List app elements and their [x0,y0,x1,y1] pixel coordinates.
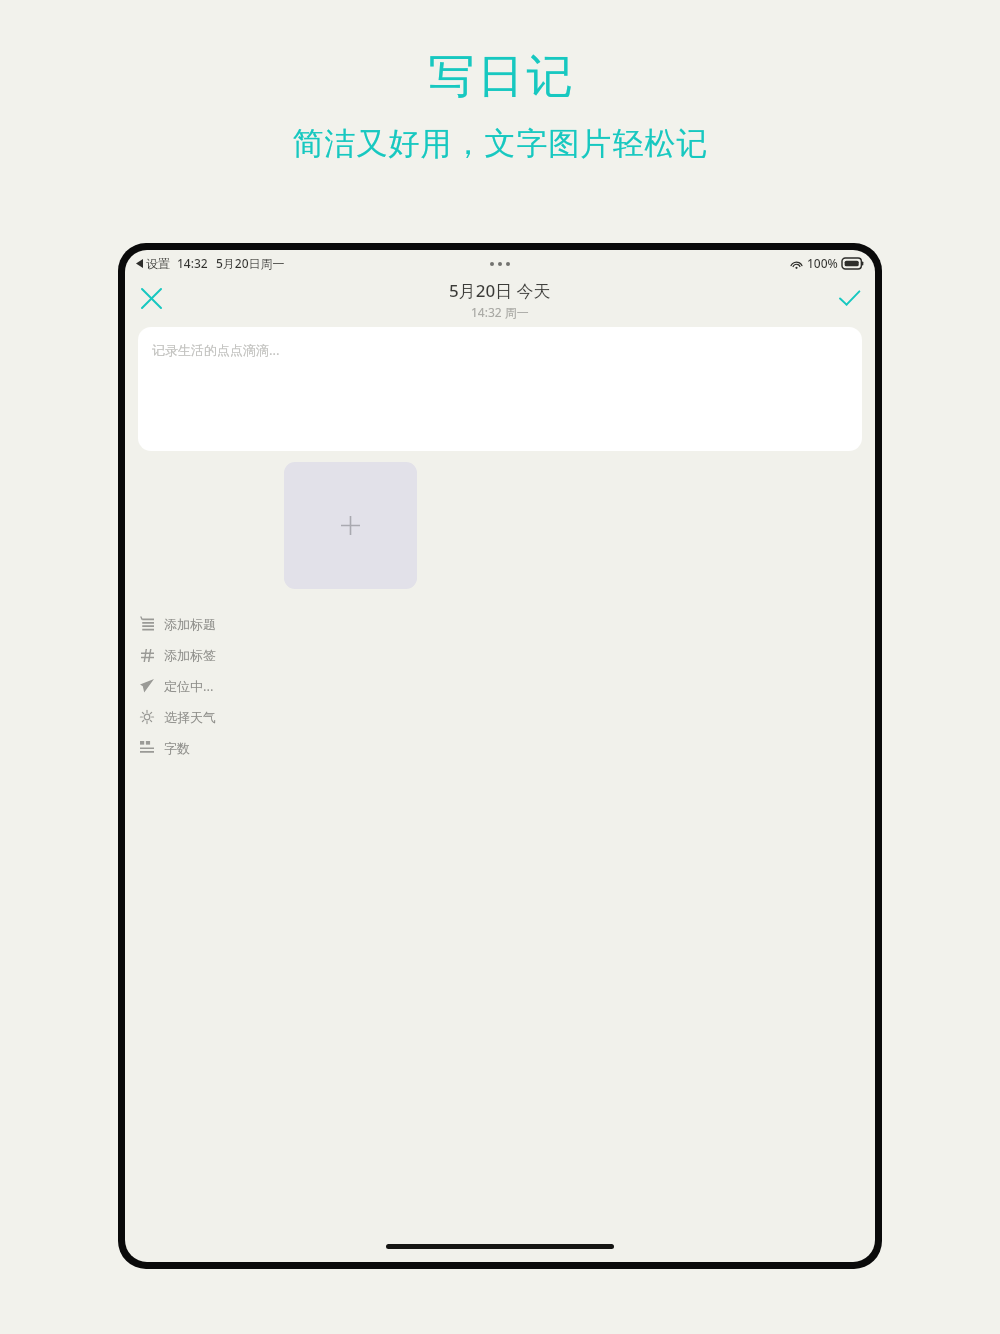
staticText: 定位中... [164,677,214,695]
staticText: 14:32 [177,255,208,271]
staticText: 设置 [146,256,170,271]
staticText: 记录生活的点点滴滴... [152,341,280,359]
button[interactable]: 添加图片 [284,462,417,589]
button[interactable]: 关闭 [133,280,169,316]
staticText: 字数 [164,740,190,756]
staticText: 100% [807,255,838,271]
staticText: 添加标题 [164,616,216,632]
button[interactable]: 记录生活的点点滴滴... [138,327,862,451]
button[interactable]: 定位中... [125,670,875,701]
button[interactable]: 添加标签 [125,639,875,670]
button[interactable]: 添加标题 [125,608,875,639]
staticText: 简洁又好用，文字图片轻松记 [292,124,708,163]
staticText: 14:32 周一 [471,304,529,320]
button[interactable]: 字数 [125,732,875,763]
staticText: 选择天气 [164,709,216,725]
button[interactable]: 选择天气 [125,701,875,732]
staticText: 5月20日周一 [216,255,285,271]
staticText: 写日记 [427,48,574,106]
button[interactable]: 保存 [831,280,867,316]
staticText: 添加标签 [164,647,216,663]
staticText: 5月20日 今天 [449,279,551,302]
